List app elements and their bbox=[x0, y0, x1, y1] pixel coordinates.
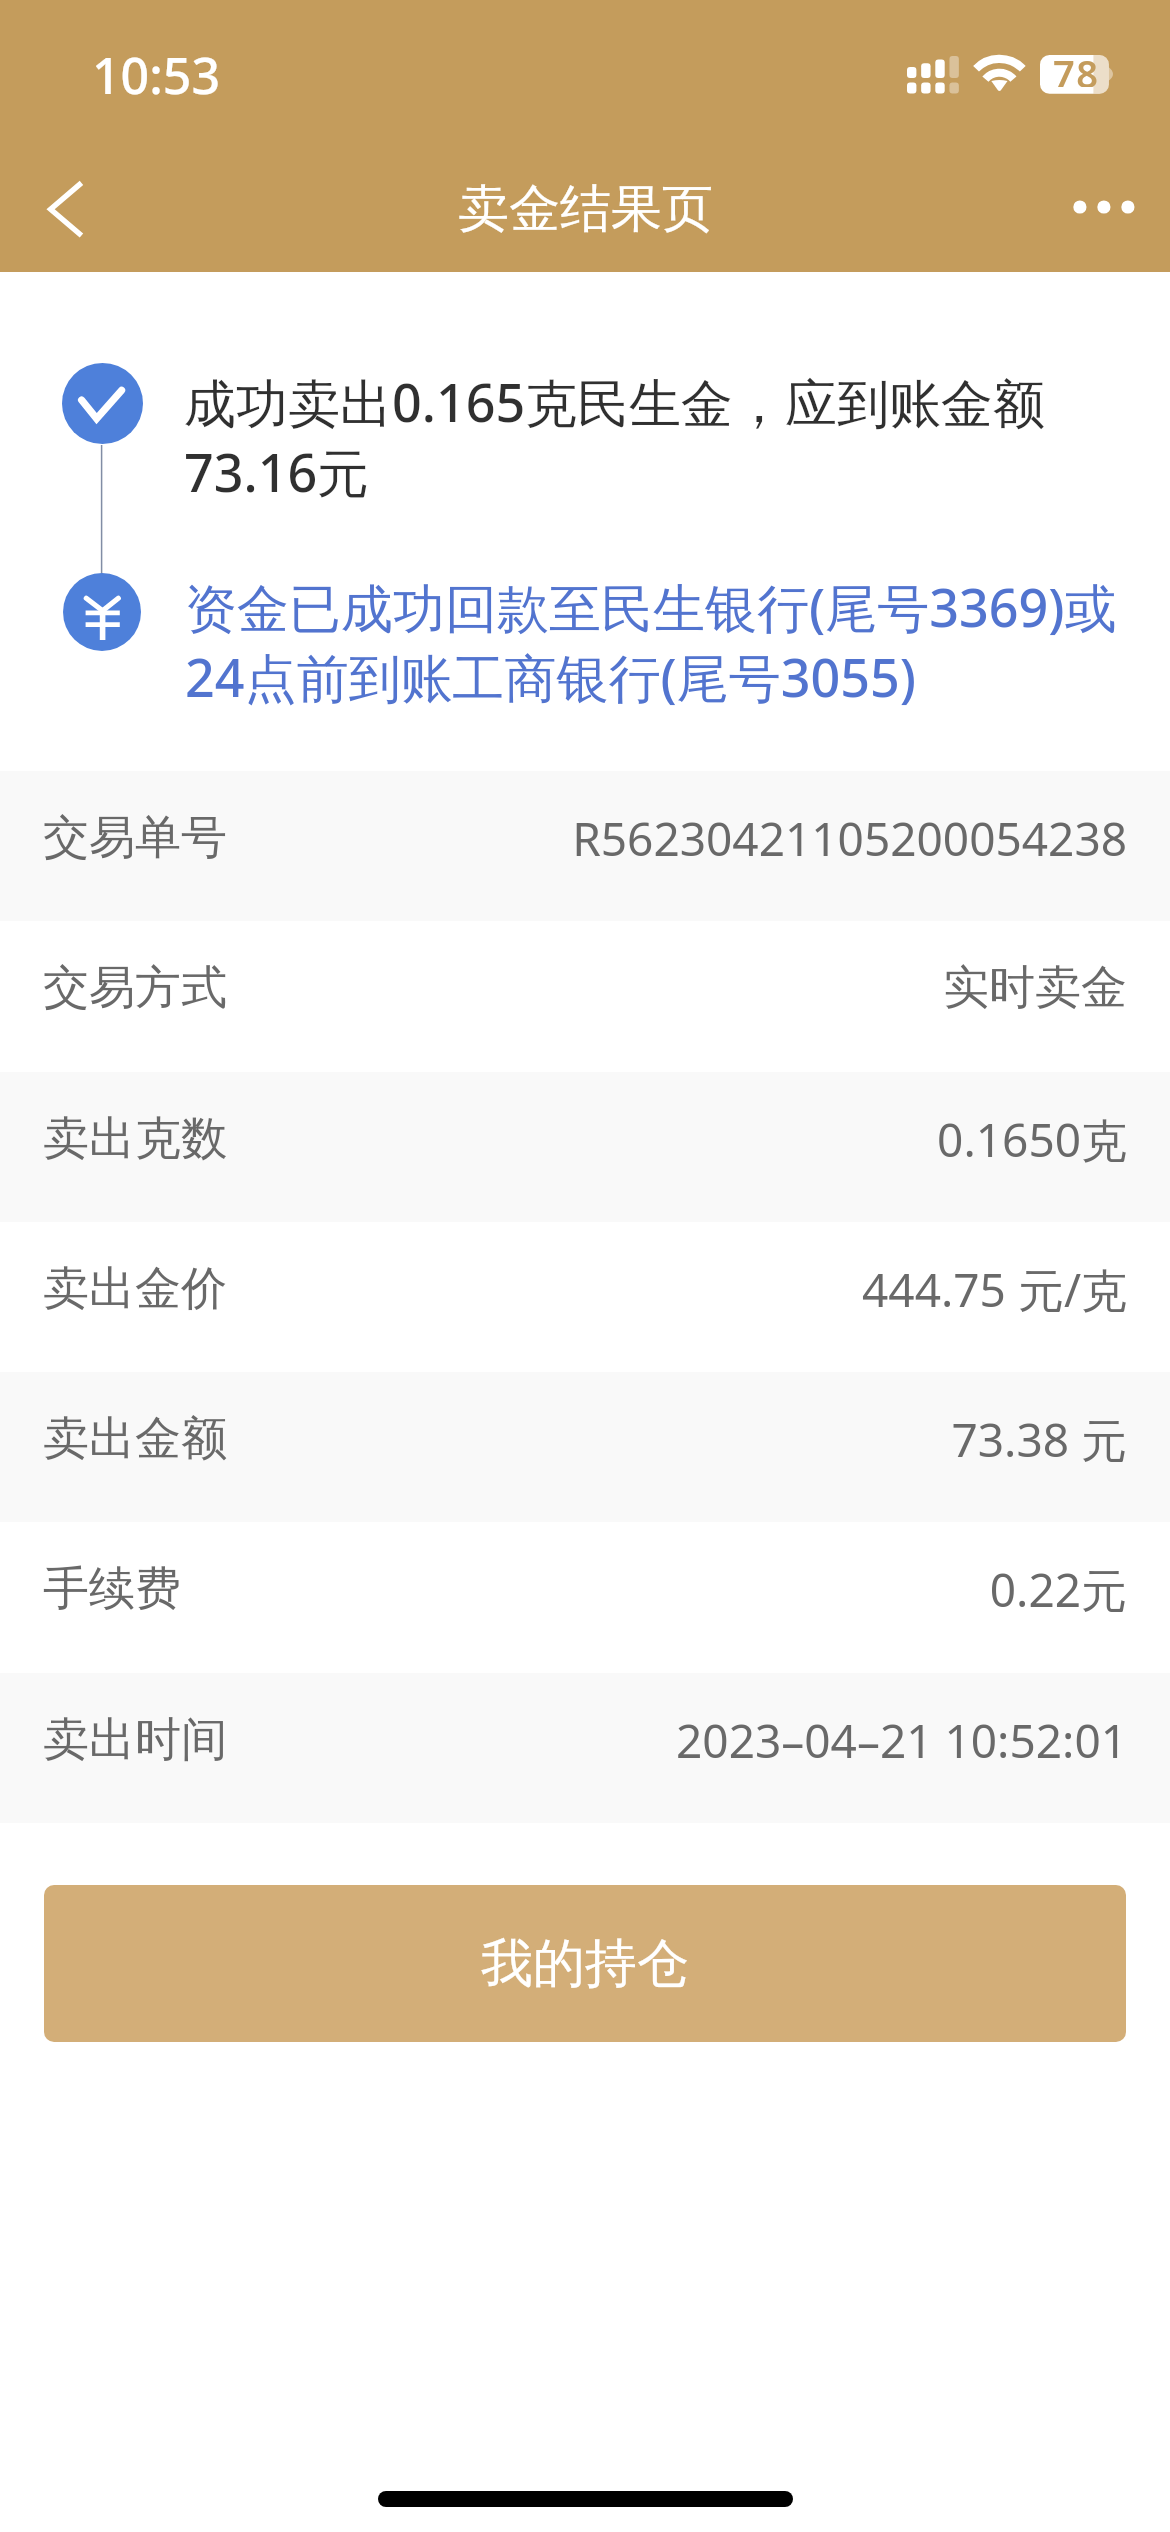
button[interactable]: 交易单号 bbox=[0, 771, 1170, 921]
staticText: 2023–04–21 10:52:01 bbox=[676, 1709, 1127, 1772]
staticText: 卖金结果页 bbox=[458, 177, 713, 241]
button[interactable]: 卖出时间 bbox=[0, 1673, 1170, 1823]
staticText: R56230421105200054238 bbox=[572, 807, 1127, 870]
button[interactable]: More options bbox=[1040, 150, 1170, 272]
staticText: 成功卖出0.165克民生金，应到账金额73.16元 bbox=[184, 366, 1056, 507]
staticText: 73.38 元 bbox=[951, 1408, 1127, 1471]
staticText: 资金已成功回款至民生银行(尾号3369)或24点前到账工商银行(尾号3055) bbox=[185, 571, 1122, 712]
staticText: 实时卖金 bbox=[943, 959, 1127, 1017]
button[interactable]: 卖出克数 bbox=[0, 1072, 1170, 1222]
staticText: 0.1650克 bbox=[937, 1108, 1127, 1171]
button[interactable]: 我的持仓 bbox=[44, 1885, 1126, 2042]
staticText: 10:53 bbox=[92, 41, 220, 109]
staticText: 交易单号 bbox=[43, 809, 227, 867]
staticText: 卖出时间 bbox=[43, 1711, 227, 1769]
staticText: 444.75 元/克 bbox=[862, 1258, 1127, 1321]
staticText: 手续费 bbox=[43, 1560, 181, 1618]
staticText: 0.22元 bbox=[989, 1558, 1127, 1621]
button[interactable]: 卖出金价 bbox=[0, 1222, 1170, 1372]
button[interactable]: 卖出金额 bbox=[0, 1372, 1170, 1522]
button[interactable]: Back bbox=[0, 150, 130, 272]
staticText: 卖出克数 bbox=[43, 1110, 227, 1168]
staticText: 卖出金额 bbox=[43, 1410, 227, 1468]
button[interactable]: 手续费 bbox=[0, 1522, 1170, 1672]
staticText: 交易方式 bbox=[43, 959, 227, 1017]
staticText: 我的持仓 bbox=[481, 1931, 689, 1997]
staticText: 78 bbox=[1053, 47, 1100, 87]
button[interactable]: 交易方式 bbox=[0, 921, 1170, 1071]
staticText: 卖出金价 bbox=[43, 1260, 227, 1318]
